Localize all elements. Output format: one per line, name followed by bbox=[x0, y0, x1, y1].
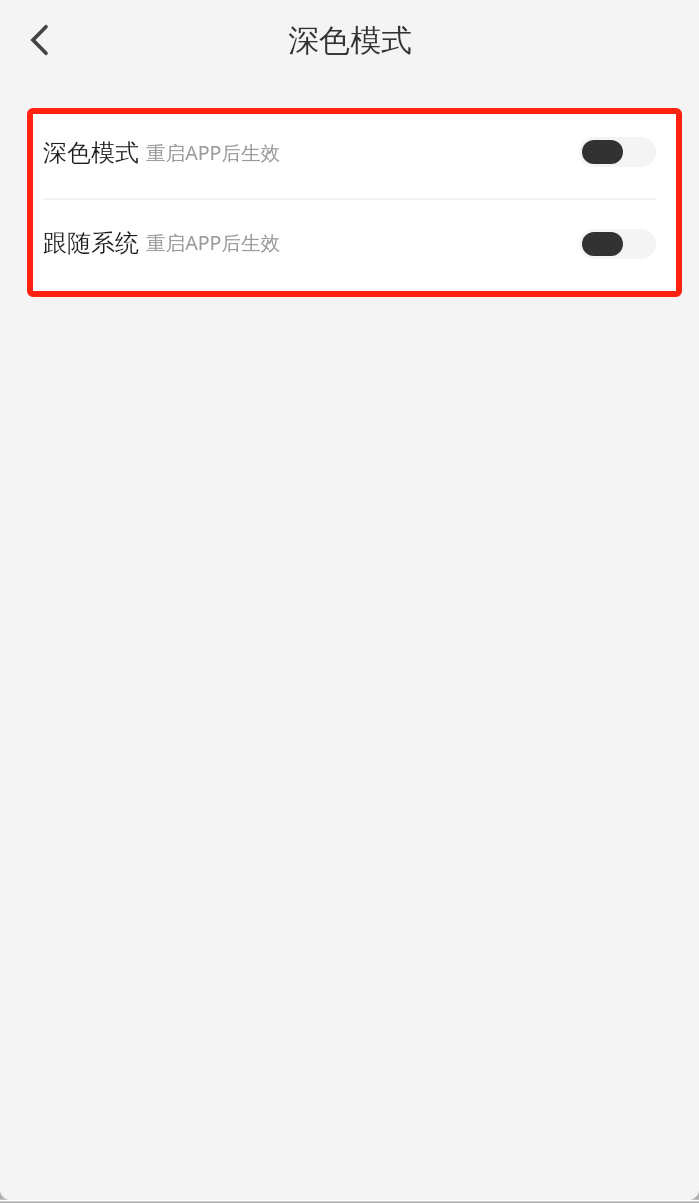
button[interactable]: 深色模式开关 bbox=[579, 137, 656, 167]
button[interactable]: 深色模式 bbox=[27, 108, 682, 198]
button[interactable]: 返回 Back bbox=[13, 12, 69, 68]
button[interactable]: 跟随系统 bbox=[27, 200, 682, 286]
staticText: 深色模式 bbox=[288, 21, 412, 60]
staticText: 跟随系统 bbox=[43, 228, 139, 258]
staticText: 重启APP后生效 bbox=[146, 229, 281, 256]
button[interactable]: 跟随系统开关 bbox=[579, 229, 656, 259]
staticText: 重启APP后生效 bbox=[146, 139, 281, 166]
staticText: 深色模式 bbox=[43, 138, 139, 168]
